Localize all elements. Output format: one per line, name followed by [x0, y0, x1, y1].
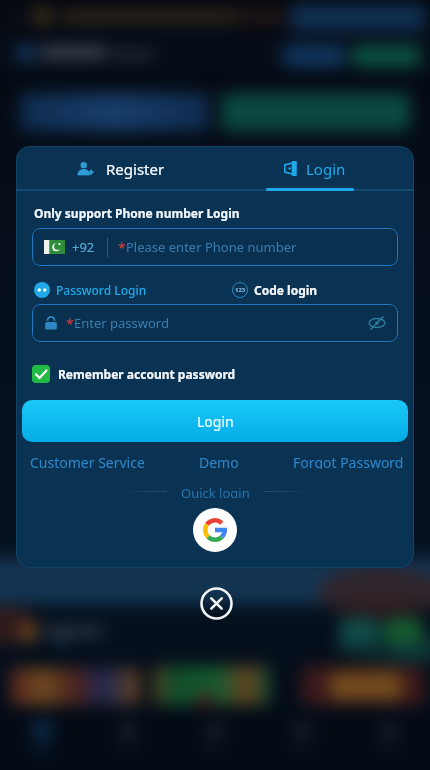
button[interactable] [198, 585, 234, 621]
staticText: Only support Phone number Login [34, 205, 240, 221]
staticText: Register [106, 159, 165, 179]
staticText: 123 [235, 286, 246, 294]
staticText: +92 [72, 238, 95, 256]
button[interactable]: Login [215, 146, 414, 191]
staticText: Enter password [74, 314, 169, 332]
staticText: Password Login [56, 282, 147, 298]
staticText: * [118, 238, 126, 257]
staticText: Login [197, 412, 234, 431]
button[interactable]: Demo [199, 453, 239, 469]
button[interactable]: Register [16, 146, 215, 191]
button[interactable]: Forgot Password [293, 453, 404, 469]
staticText: Please enter Phone number [126, 238, 297, 256]
staticText: Remember account password [58, 366, 236, 382]
button[interactable]: Login [22, 400, 408, 442]
staticText: * [66, 314, 74, 333]
button[interactable]: +92 [32, 228, 398, 266]
staticText: Login [306, 159, 346, 179]
staticText: Quick login [181, 484, 250, 498]
staticText: Code login [254, 282, 318, 298]
button[interactable] [193, 508, 237, 552]
button[interactable]: 123 [232, 282, 318, 298]
button[interactable]: * [32, 304, 398, 342]
button[interactable]: Password Login [34, 282, 147, 298]
button[interactable]: Remember account password [32, 365, 236, 383]
button[interactable]: Customer Service [30, 453, 145, 469]
